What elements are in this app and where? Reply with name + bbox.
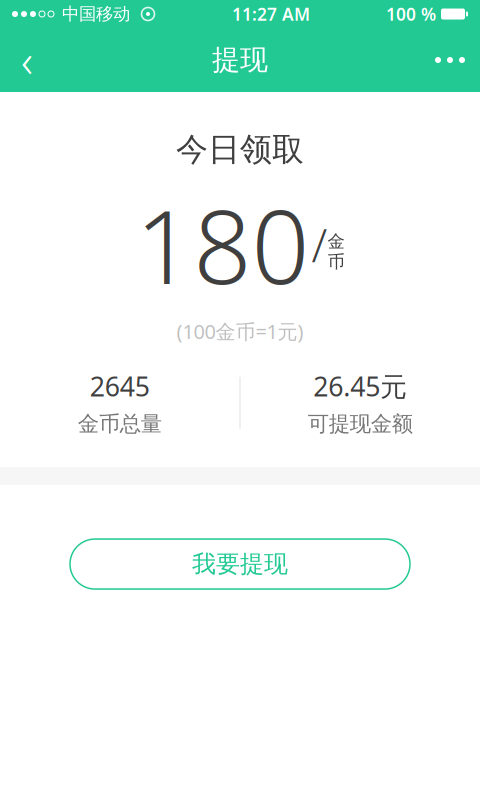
button[interactable]: Back [0,28,54,92]
staticText: 可提现金额 [308,411,413,437]
staticText: 2645 [90,368,150,404]
staticText: / [311,214,327,275]
staticText: 金币总量 [78,411,162,437]
button[interactable]: 我要提现 [70,539,410,589]
staticText: 180 [135,177,309,312]
staticText: ‹ [21,30,33,90]
staticText: 今日领取 [176,130,304,169]
staticText: 中国移动 [62,3,130,25]
button[interactable]: More options [420,28,480,92]
staticText: (100金币=1元) [176,318,303,344]
staticText: 我要提现 [192,549,288,579]
staticText: 币 [327,251,344,272]
staticText: 11:27 AM [232,2,310,25]
staticText: 26.45元 [313,368,407,404]
staticText: 提现 [212,43,268,77]
staticText: 100 % [386,2,436,25]
staticText: 金 [327,231,344,252]
